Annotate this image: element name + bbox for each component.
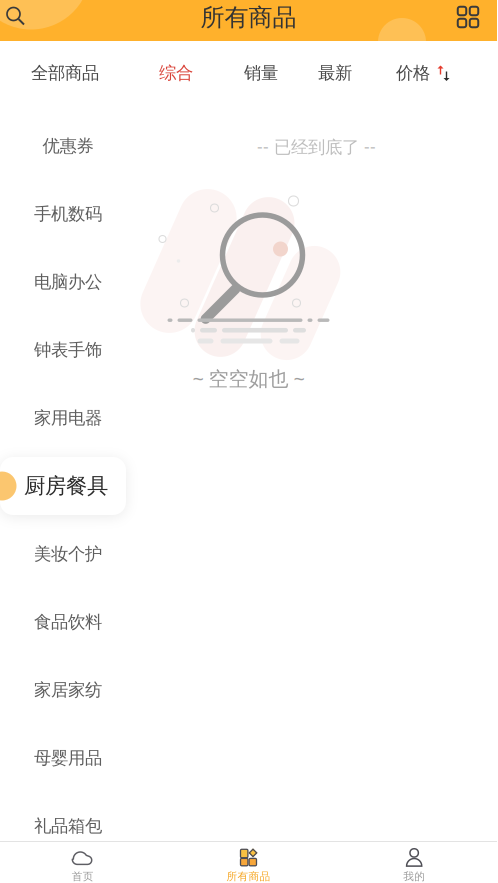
staticText: 所有商品 xyxy=(200,3,296,32)
button[interactable]: 销量 xyxy=(232,41,290,105)
button[interactable]: 手机数码 xyxy=(0,180,136,248)
button[interactable]: 综合 xyxy=(147,41,205,105)
staticText: 家居家纺 xyxy=(34,679,102,701)
button[interactable]: 家用电器 xyxy=(0,384,136,452)
button[interactable]: 食品饮料 xyxy=(0,588,136,656)
button[interactable]: 家居家纺 xyxy=(0,656,136,724)
staticText: 电脑办公 xyxy=(34,271,102,293)
staticText: ~ 空空如也 ~ xyxy=(192,365,304,392)
staticText: 家用电器 xyxy=(34,407,102,429)
button[interactable]: 优惠券 xyxy=(0,112,136,180)
staticText: 厨房餐具 xyxy=(24,473,108,499)
button[interactable]: 首页 xyxy=(0,842,166,883)
button[interactable]: 礼品箱包 xyxy=(0,792,136,860)
staticText: 食品饮料 xyxy=(34,611,102,633)
staticText: 最新 xyxy=(318,62,352,84)
staticText: 钟表手饰 xyxy=(34,339,102,361)
staticText: 手机数码 xyxy=(34,203,102,225)
button[interactable]: Search xyxy=(0,0,34,38)
button[interactable]: 母婴用品 xyxy=(0,724,136,792)
staticText: 销量 xyxy=(244,62,278,84)
staticText: 综合 xyxy=(159,62,193,84)
button[interactable]: 钟表手饰 xyxy=(0,316,136,384)
button[interactable]: 厨房餐具 xyxy=(0,452,136,520)
staticText: 首页 xyxy=(72,870,94,883)
button[interactable]: 我的 xyxy=(331,842,497,883)
staticText: 我的 xyxy=(403,870,425,883)
button[interactable]: 电脑办公 xyxy=(0,248,136,316)
staticText: 所有商品 xyxy=(226,870,270,883)
staticText: 美妆个护 xyxy=(34,543,102,565)
button[interactable]: 价格 xyxy=(386,41,460,105)
button[interactable]: 全部商品 xyxy=(20,41,110,105)
staticText: 价格 xyxy=(396,62,430,84)
staticText: -- 已经到底了 -- xyxy=(257,135,376,158)
staticText: 礼品箱包 xyxy=(34,815,102,837)
staticText: 母婴用品 xyxy=(34,747,102,769)
staticText: 全部商品 xyxy=(31,62,99,84)
button[interactable]: 所有商品 xyxy=(166,842,331,883)
button[interactable]: Switch layout xyxy=(451,0,485,37)
staticText: 优惠券 xyxy=(42,135,93,157)
button[interactable]: 美妆个护 xyxy=(0,520,136,588)
button[interactable]: 最新 xyxy=(306,41,364,105)
